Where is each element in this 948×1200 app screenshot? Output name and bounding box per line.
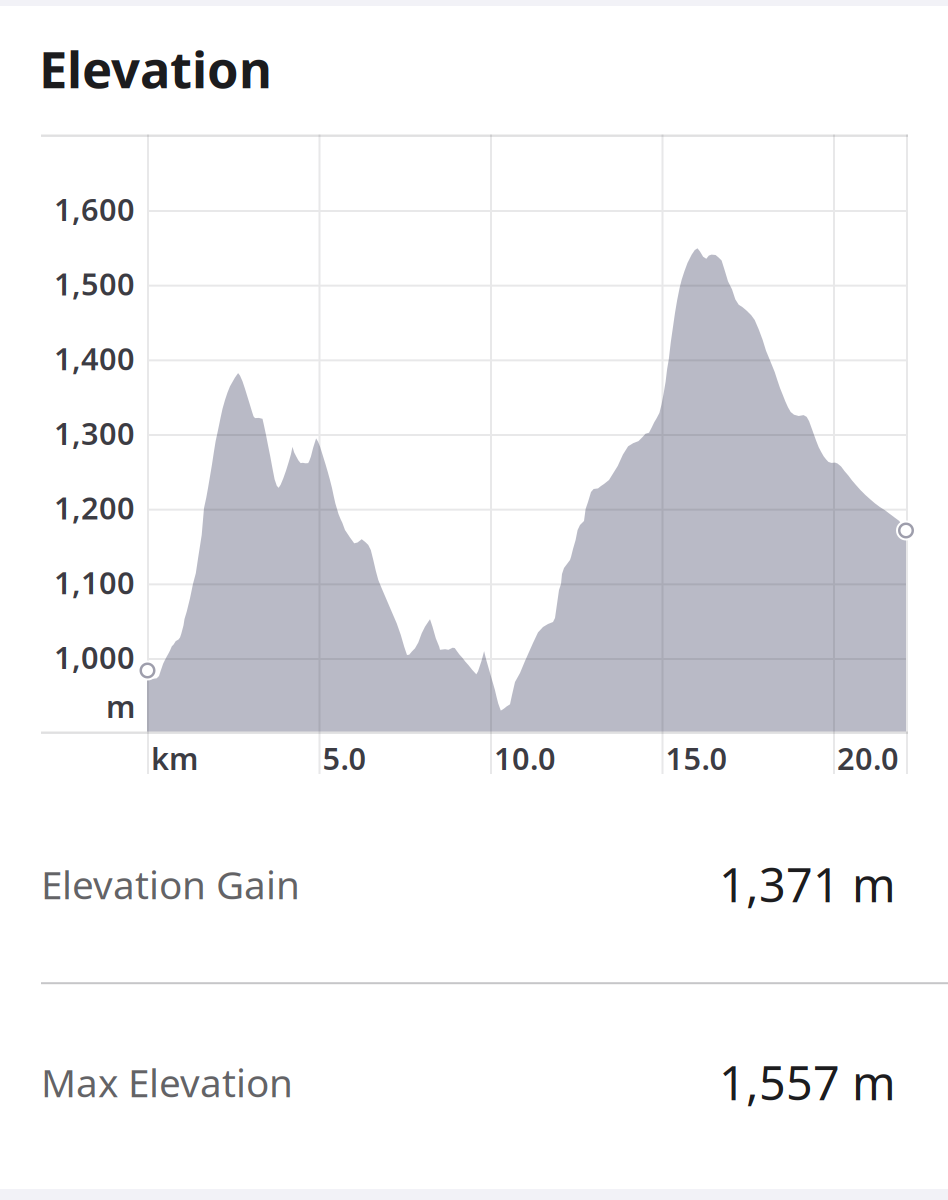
staticText: 1,200 bbox=[54, 487, 135, 528]
staticText: 1,500 bbox=[54, 263, 135, 304]
staticText: 10.0 bbox=[494, 738, 556, 778]
staticText: 1,100 bbox=[54, 562, 135, 603]
staticText: m bbox=[106, 686, 135, 726]
staticText: 1,300 bbox=[54, 413, 135, 453]
staticText: 20.0 bbox=[837, 738, 899, 778]
staticText: 15.0 bbox=[665, 738, 727, 778]
staticText: 1,000 bbox=[54, 637, 135, 677]
staticText: 1,371 m bbox=[719, 853, 896, 915]
button[interactable]: Max Elevation bbox=[0, 984, 948, 1180]
button[interactable]: Elevation Gain bbox=[0, 786, 948, 982]
staticText: 1,400 bbox=[54, 338, 135, 379]
staticText: Elevation Gain bbox=[41, 858, 300, 910]
staticText: 5.0 bbox=[322, 738, 366, 778]
staticText: Max Elevation bbox=[41, 1056, 293, 1108]
staticText: 1,600 bbox=[54, 189, 135, 229]
staticText: 1,557 m bbox=[719, 1051, 896, 1113]
staticText: km bbox=[151, 738, 198, 778]
staticText: Elevation bbox=[39, 35, 272, 102]
